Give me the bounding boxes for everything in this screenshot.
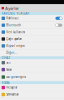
staticText: Hesaplar	[6, 86, 17, 89]
staticText: KABLOSUZ VE AĞLAR	[2, 12, 30, 15]
staticText: Diğer...	[6, 51, 17, 54]
staticText: Çağrı ayarları	[6, 37, 22, 41]
staticText: Kablosuz	[6, 16, 18, 20]
button[interactable]: Veri kullanımı	[0, 29, 64, 36]
staticText: Kişisel erişim	[6, 44, 24, 48]
staticText: Ekran	[6, 68, 12, 71]
button[interactable]: Çağrı ayarları	[0, 36, 64, 43]
button[interactable]: Kablosuz	[0, 15, 64, 22]
staticText: Veri kullanımı	[6, 30, 25, 34]
button[interactable]: Hesaplar	[0, 84, 64, 91]
button[interactable]: Kişisel erişim	[0, 43, 64, 49]
staticText: LED göstergesi	[6, 75, 26, 79]
staticText: SİM kartları	[6, 93, 19, 96]
button[interactable]: Ses	[0, 59, 64, 66]
button[interactable]: Diğer...	[0, 49, 64, 56]
button[interactable]: SİM kartları	[0, 91, 64, 98]
button[interactable]: LED göstergesi	[0, 73, 64, 81]
staticText: Ayarlar	[5, 5, 19, 11]
button[interactable]: Ekran	[0, 66, 64, 73]
staticText: Ses	[6, 61, 10, 64]
staticText: Bluetooth	[6, 23, 21, 27]
button[interactable]: Bluetooth	[0, 22, 64, 29]
staticText: KİŞİSEL	[2, 81, 10, 84]
staticText: CİHAZ	[2, 56, 11, 60]
